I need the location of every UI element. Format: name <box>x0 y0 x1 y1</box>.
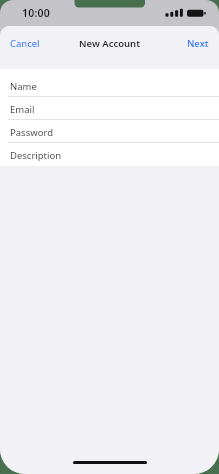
staticText: Password <box>10 126 53 139</box>
button[interactable]: Password <box>0 120 219 143</box>
staticText: Next <box>187 37 209 50</box>
button[interactable]: Name <box>0 74 219 97</box>
button[interactable]: Next <box>187 37 219 50</box>
button[interactable]: Email <box>0 97 219 120</box>
staticText: Description <box>10 149 62 162</box>
staticText: Email <box>10 103 35 116</box>
staticText: Name <box>10 80 37 93</box>
staticText: 10:00 <box>22 6 50 20</box>
staticText: Cancel <box>10 37 40 50</box>
staticText: New Account <box>79 37 141 50</box>
button[interactable]: Cancel <box>0 37 40 50</box>
button[interactable]: Description <box>0 143 219 166</box>
